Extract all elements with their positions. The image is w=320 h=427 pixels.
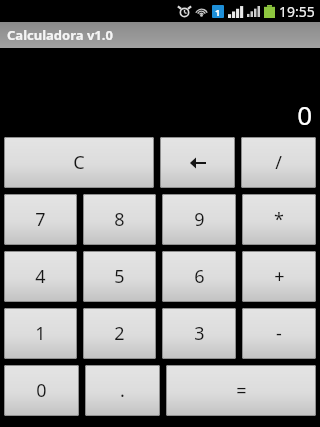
button[interactable]: . [85, 365, 160, 416]
staticText: 1 [35, 321, 46, 346]
staticText: 4 [35, 264, 46, 289]
staticText: 7 [35, 207, 46, 232]
staticText: / [275, 150, 282, 175]
staticText: 5 [114, 264, 125, 289]
staticText: 0 [297, 97, 312, 132]
staticText: 9 [194, 207, 205, 232]
button[interactable]: 2 [83, 308, 156, 359]
staticText: 6 [194, 264, 205, 289]
button[interactable]: * [242, 194, 316, 245]
staticText: Calculadora v1.0 [7, 26, 113, 44]
button[interactable]: + [242, 251, 316, 302]
button[interactable]: Backspace [160, 137, 235, 188]
button[interactable]: 4 [4, 251, 77, 302]
button[interactable]: / [241, 137, 316, 188]
button[interactable]: 6 [162, 251, 236, 302]
staticText: + [274, 264, 285, 289]
staticText: 3 [194, 321, 205, 346]
button[interactable]: = [166, 365, 316, 416]
staticText: 19:55 [279, 2, 315, 21]
staticText: - [276, 321, 282, 346]
staticText: = [236, 378, 247, 403]
staticText: 8 [114, 207, 125, 232]
staticText: * [274, 207, 284, 232]
staticText: C [73, 150, 85, 175]
button[interactable]: 8 [83, 194, 156, 245]
staticText: 2 [114, 321, 125, 346]
staticText: . [120, 378, 125, 403]
button[interactable]: 0 [4, 365, 79, 416]
button[interactable]: - [242, 308, 316, 359]
button[interactable]: 3 [162, 308, 236, 359]
button[interactable]: 9 [162, 194, 236, 245]
button[interactable]: 1 [4, 308, 77, 359]
button[interactable]: 7 [4, 194, 77, 245]
staticText: 0 [36, 378, 47, 403]
button[interactable]: C [4, 137, 154, 188]
staticText: 1 [215, 6, 221, 18]
button[interactable]: 5 [83, 251, 156, 302]
